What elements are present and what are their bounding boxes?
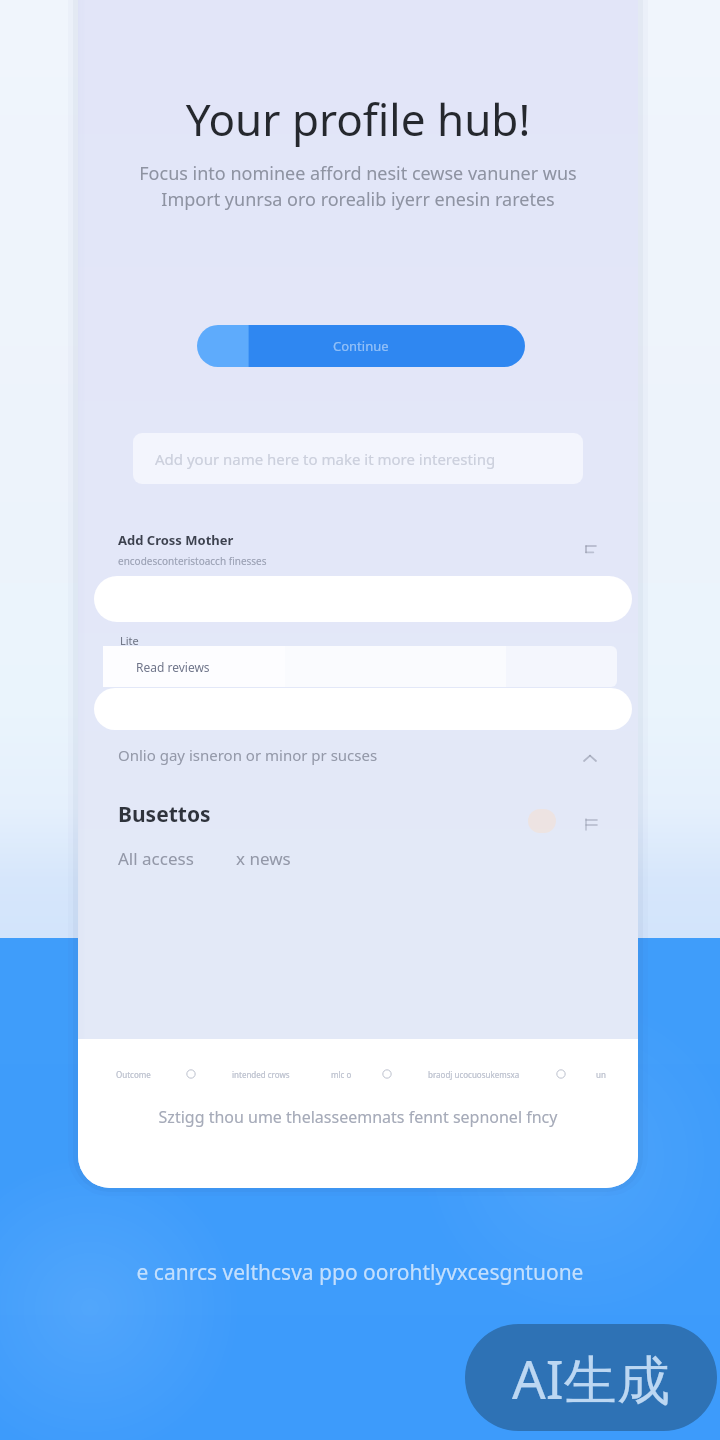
staticText: Focus into nominee afford nesit cewse va… (78, 161, 638, 211)
staticText: un (596, 1069, 606, 1080)
button[interactable]: Collapse (580, 749, 600, 769)
staticText: Onlio gay isneron or minor pr sucses (118, 745, 378, 765)
button[interactable]: Onlio gay isneron or minor pr sucses (118, 745, 598, 771)
button[interactable]: More (581, 540, 601, 560)
button[interactable]: Continue (197, 325, 525, 367)
staticText: Outcome (116, 1069, 151, 1080)
button[interactable]: Read reviews (103, 646, 617, 687)
staticText: AI生成 (512, 1342, 670, 1414)
staticText: Add Cross Mother (118, 531, 234, 549)
staticText: Busettos (118, 800, 211, 829)
button[interactable]: Menu (581, 814, 601, 834)
button[interactable]: Add Cross Mother (118, 531, 598, 569)
button[interactable]: un (590, 1064, 612, 1084)
staticText: Continue (333, 337, 389, 355)
staticText: x news (236, 847, 291, 870)
staticText: mlc o (331, 1069, 352, 1080)
button[interactable]: nav (379, 1064, 395, 1084)
button[interactable] (94, 576, 632, 622)
button[interactable]: nav (183, 1064, 199, 1084)
button[interactable]: mlc o (323, 1064, 359, 1084)
staticText: Sztigg thou ume thelasseemnats fennt sep… (78, 1106, 638, 1128)
staticText: e canrcs velthcsva ppo oorohtlyvxcesgntu… (0, 1258, 720, 1287)
button[interactable]: intended crows (220, 1064, 302, 1084)
staticText: Add your name here to make it more inter… (155, 449, 496, 469)
staticText: All access (118, 847, 194, 870)
button[interactable]: Outcome (104, 1064, 162, 1084)
button[interactable]: Add your name here to make it more inter… (133, 433, 583, 484)
button[interactable]: nav (553, 1064, 569, 1084)
staticText: Read reviews (136, 659, 210, 675)
staticText: braodj ucocuosukemsxa (428, 1069, 520, 1080)
staticText: intended crows (232, 1069, 290, 1080)
staticText: Your profile hub! (78, 89, 638, 149)
button[interactable] (94, 688, 632, 730)
staticText: encodesconteristoacch finesses (118, 554, 267, 568)
staticText: Lite (120, 633, 139, 648)
button[interactable]: braodj ucocuosukemsxa (416, 1064, 532, 1084)
